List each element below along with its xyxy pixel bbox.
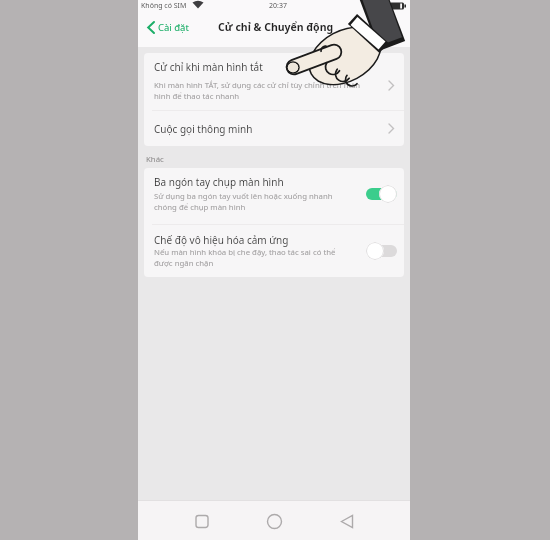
button[interactable]: Cài đặt [147, 21, 189, 34]
staticText: Cuộc gọi thông minh [154, 122, 253, 136]
staticText: Cử chỉ khi màn hình tắt [154, 60, 263, 74]
button[interactable]: Ba ngón tay chụp màn hình [144, 168, 404, 224]
staticText: Không có SIM [141, 1, 187, 11]
staticText: Cử chỉ & Chuyển động [218, 20, 334, 34]
staticText: Chế độ vô hiệu hóa cảm ứng [154, 233, 289, 247]
staticText: Khác [146, 154, 164, 165]
staticText: Nếu màn hình khóa bị che đậy, thao tác s… [154, 247, 370, 268]
staticText: Khi màn hình TẮT, sử dụng các cử chỉ tùy… [154, 80, 400, 101]
button[interactable] [262, 509, 286, 533]
staticText: Ba ngón tay chụp màn hình [154, 175, 284, 189]
staticText: Cài đặt [158, 21, 189, 34]
button[interactable] [366, 242, 397, 260]
button[interactable]: Chế độ vô hiệu hóa cảm ứng [144, 225, 404, 277]
button[interactable] [190, 509, 214, 533]
staticText: Sử dụng ba ngón tay vuốt lên hoặc xuống … [154, 191, 370, 212]
button[interactable] [334, 509, 358, 533]
staticText: 20:37 [269, 1, 287, 11]
button[interactable] [366, 185, 397, 203]
button[interactable]: Cuộc gọi thông minh [144, 111, 404, 146]
button[interactable]: Cử chỉ khi màn hình tắt [144, 53, 404, 110]
